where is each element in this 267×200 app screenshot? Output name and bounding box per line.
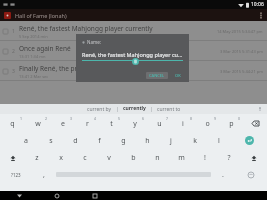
- button[interactable]: y: [123, 115, 147, 132]
- button[interactable]: d: [63, 132, 87, 149]
- staticText: q: [10, 119, 15, 129]
- staticText: d: [73, 136, 78, 146]
- staticText: 5: [118, 116, 121, 121]
- button[interactable]: current to: [152, 105, 186, 114]
- button[interactable]: Recent apps: [76, 191, 114, 200]
- button[interactable]: x: [49, 149, 73, 166]
- staticText: 3 Mar 2015 5:44:21 pm: [220, 69, 263, 74]
- button[interactable]: !: [193, 149, 217, 166]
- button[interactable]: j: [159, 132, 183, 149]
- staticText: v: [107, 153, 111, 163]
- button[interactable]: h: [135, 132, 159, 149]
- button[interactable]: OK: [172, 72, 184, 79]
- staticText: l: [218, 136, 220, 146]
- button[interactable]: n: [145, 149, 169, 166]
- staticText: z: [35, 153, 39, 163]
- button[interactable]: Voice input: [257, 106, 263, 112]
- staticText: i: [182, 119, 184, 129]
- staticText: OK: [175, 73, 181, 78]
- staticText: 9: [214, 116, 217, 121]
- staticText: 10:06: [251, 1, 264, 8]
- staticText: s: [49, 136, 53, 146]
- staticText: 3: [12, 68, 15, 75]
- button[interactable]: f: [87, 132, 111, 149]
- button[interactable]: 2: [0, 41, 267, 61]
- staticText: ?123: [11, 172, 21, 178]
- staticText: 0: [238, 116, 241, 121]
- button[interactable]: m: [169, 149, 193, 166]
- button[interactable]: i: [171, 115, 195, 132]
- button[interactable]: a: [13, 132, 38, 149]
- button[interactable]: l: [207, 132, 231, 149]
- button[interactable]: s: [38, 132, 63, 149]
- button[interactable]: Space: [56, 171, 211, 178]
- staticText: e: [61, 119, 65, 129]
- staticText: u: [157, 119, 162, 129]
- staticText: 2: [12, 48, 15, 55]
- staticText: Hall of Fame (lonah): [15, 12, 67, 19]
- staticText: current to: [157, 106, 181, 113]
- staticText: 6: [142, 116, 145, 121]
- staticText: current by: [87, 106, 112, 113]
- staticText: Once again René: [19, 44, 71, 53]
- button[interactable]: CANCEL: [146, 72, 168, 79]
- button[interactable]: t: [99, 115, 123, 132]
- staticText: p: [229, 119, 234, 129]
- staticText: y: [133, 119, 137, 129]
- staticText: 1: [20, 116, 23, 121]
- button[interactable]: Shift: [0, 149, 25, 166]
- button[interactable]: g: [111, 132, 135, 149]
- button[interactable]: v: [97, 149, 121, 166]
- staticText: 13:41 2 Mar sec: [19, 74, 49, 79]
- button[interactable]: More options: [255, 9, 267, 21]
- staticText: 2: [45, 116, 48, 121]
- button[interactable]: .: [211, 166, 235, 183]
- staticText: k: [193, 136, 197, 146]
- staticText: a: [24, 136, 28, 146]
- button[interactable]: z: [25, 149, 49, 166]
- staticText: 3: [70, 116, 73, 121]
- button[interactable]: Backspace: [243, 115, 267, 132]
- staticText: Name:: [87, 39, 101, 45]
- staticText: w: [35, 119, 41, 129]
- staticText: m: [178, 153, 185, 163]
- button[interactable]: o: [195, 115, 219, 132]
- staticText: t: [110, 119, 113, 129]
- button[interactable]: r: [75, 115, 99, 132]
- button[interactable]: Back: [0, 191, 38, 200]
- button[interactable]: e: [50, 115, 75, 132]
- button[interactable]: 1: [0, 21, 267, 41]
- button[interactable]: c: [73, 149, 97, 166]
- staticText: !: [204, 153, 206, 163]
- button[interactable]: ,: [32, 166, 56, 183]
- button[interactable]: 3: [0, 61, 267, 81]
- button[interactable]: ?123: [0, 166, 32, 183]
- staticText: René, the fastest Mahjongg player curren…: [19, 24, 153, 33]
- staticText: currently: [123, 105, 146, 112]
- button[interactable]: Enter: [231, 132, 267, 149]
- button[interactable]: App icon: [4, 12, 11, 19]
- staticText: 1: [12, 28, 15, 35]
- button[interactable]: w: [25, 115, 50, 132]
- button[interactable]: b: [121, 149, 145, 166]
- button[interactable]: Emoji: [235, 166, 267, 183]
- button[interactable]: p: [219, 115, 243, 132]
- button[interactable]: currently: [118, 104, 151, 114]
- button[interactable]: Shift: [241, 149, 267, 166]
- staticText: c: [83, 153, 87, 163]
- button[interactable]: Home: [38, 191, 76, 200]
- button[interactable]: k: [183, 132, 207, 149]
- staticText: 7: [166, 116, 169, 121]
- staticText: 3 Mar 2015 5:31:43 pm: [220, 49, 263, 54]
- button[interactable]: ?: [217, 149, 241, 166]
- staticText: René, the fastest Mahjongg player curren…: [82, 51, 183, 58]
- staticText: 5 Sep 2014 min: [19, 34, 48, 39]
- button[interactable]: q: [0, 115, 25, 132]
- staticText: n: [155, 153, 160, 163]
- staticText: 14 May 2015 5:34:47 pm: [217, 29, 263, 34]
- button[interactable]: u: [147, 115, 171, 132]
- staticText: 13:31 1:34 mn: [19, 54, 46, 59]
- staticText: ,: [43, 170, 45, 180]
- button[interactable]: current by: [82, 105, 117, 114]
- staticText: j: [170, 136, 172, 146]
